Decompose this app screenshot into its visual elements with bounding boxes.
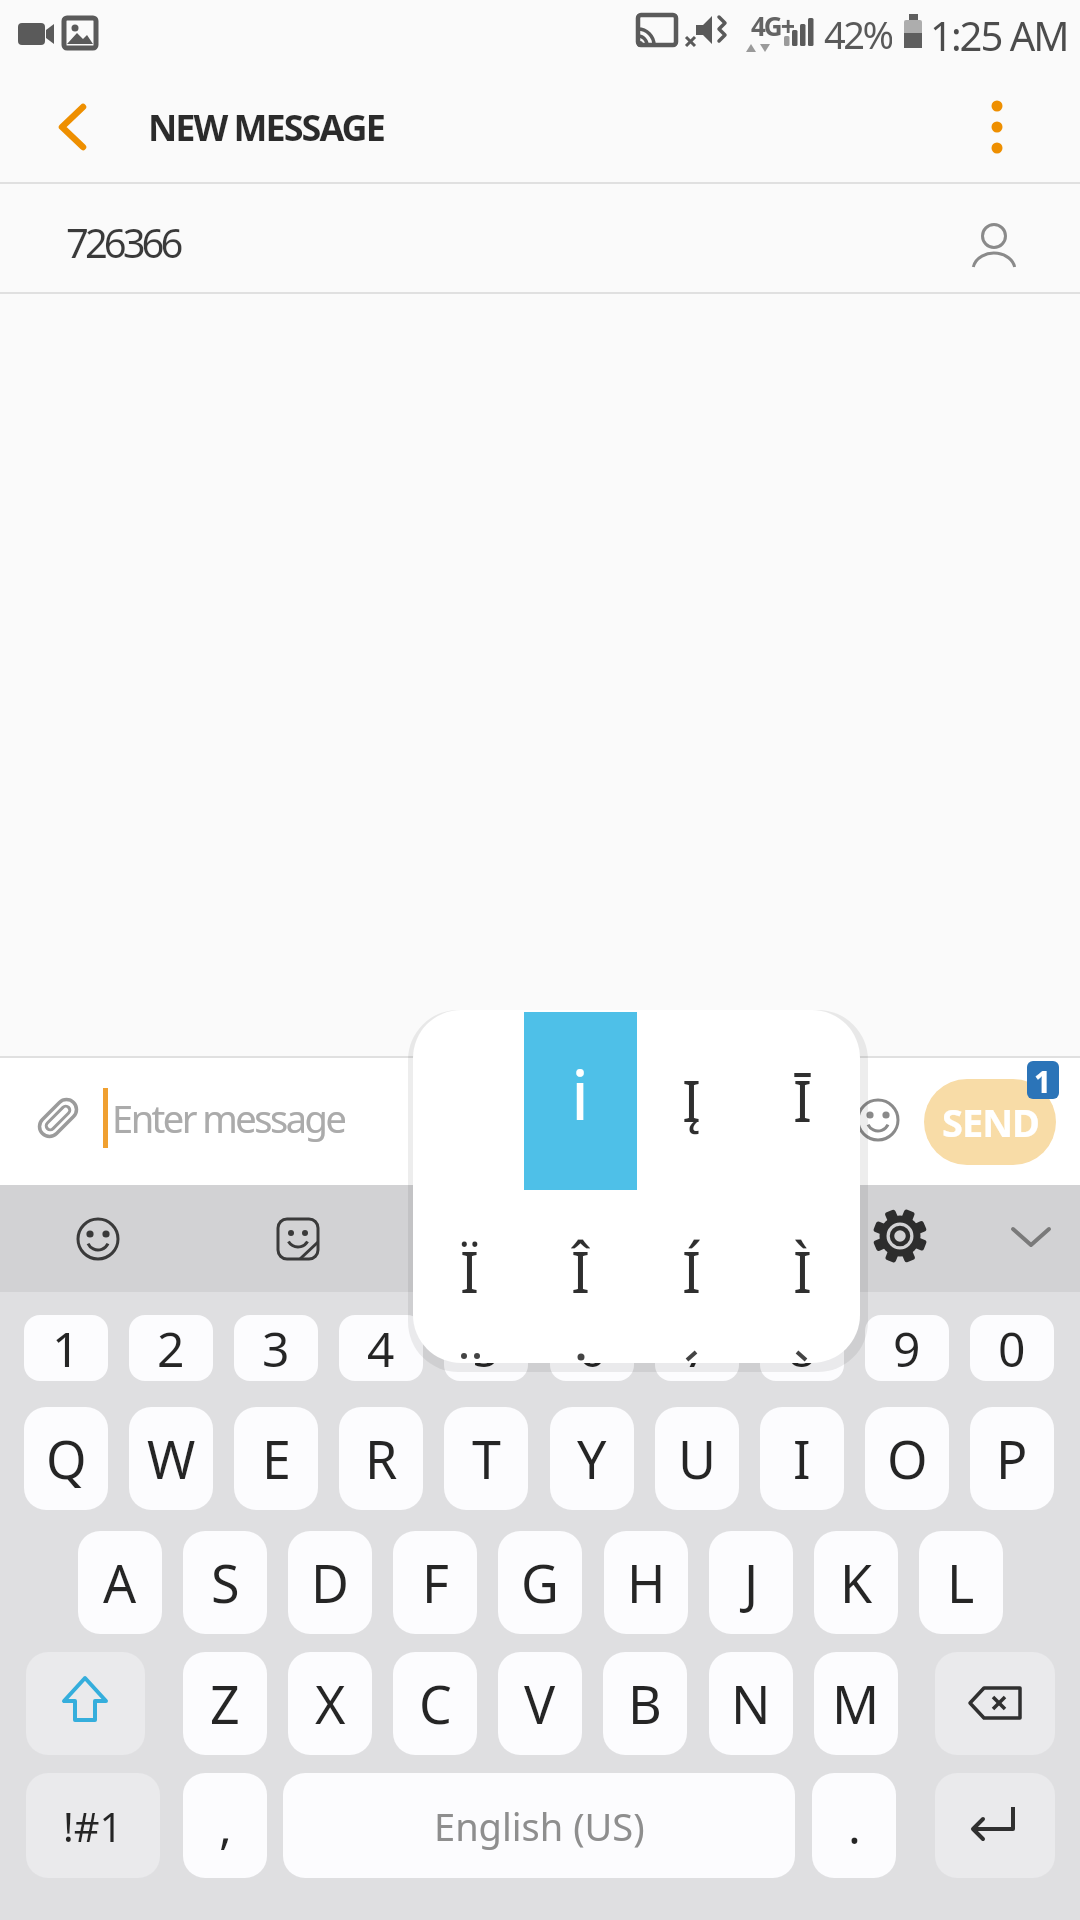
button[interactable]: I <box>760 1407 844 1510</box>
staticText: 5 <box>472 1316 500 1381</box>
button[interactable]: Q <box>24 1407 108 1510</box>
button[interactable] <box>935 1773 1055 1878</box>
staticText: 1 <box>52 1316 80 1381</box>
button[interactable] <box>958 88 1036 166</box>
staticText: A <box>103 1547 137 1618</box>
button[interactable]: W <box>129 1407 213 1510</box>
staticText: Ï <box>460 1233 479 1309</box>
button[interactable]: B <box>603 1652 687 1755</box>
staticText: 2 <box>157 1316 185 1381</box>
button[interactable] <box>995 1203 1067 1275</box>
button[interactable]: M <box>814 1652 898 1755</box>
staticText: NEW MESSAGE <box>148 103 384 152</box>
button[interactable]: N <box>709 1652 793 1755</box>
button[interactable]: !#1 <box>26 1773 160 1878</box>
staticText: Ì <box>793 1233 812 1309</box>
button[interactable]: 4 <box>339 1315 423 1381</box>
staticText: H <box>627 1547 666 1618</box>
button[interactable] <box>956 202 1032 278</box>
button[interactable]: , <box>183 1773 267 1878</box>
button[interactable]: 2 <box>129 1315 213 1381</box>
staticText: M <box>832 1668 880 1739</box>
button[interactable]: 8 <box>760 1315 844 1381</box>
staticText: 9 <box>893 1316 921 1381</box>
staticText: F <box>422 1547 449 1618</box>
button[interactable]: X <box>288 1652 372 1755</box>
button[interactable]: F <box>393 1531 477 1634</box>
staticText: 7 <box>683 1316 711 1381</box>
staticText: I <box>793 1423 811 1494</box>
staticText: U <box>678 1423 717 1494</box>
staticText: 0 <box>998 1316 1026 1381</box>
button[interactable]: O <box>865 1407 949 1510</box>
staticText: V <box>524 1668 556 1739</box>
staticText: G <box>521 1547 559 1618</box>
button[interactable]: 5 <box>444 1315 528 1381</box>
staticText: S <box>211 1547 240 1618</box>
button[interactable]: E <box>234 1407 318 1510</box>
staticText: Z <box>210 1668 240 1739</box>
button[interactable]: P <box>970 1407 1054 1510</box>
staticText: N <box>731 1668 771 1739</box>
staticText: C <box>419 1668 452 1739</box>
staticText: 4 <box>367 1316 395 1381</box>
staticText: 3 <box>262 1316 290 1381</box>
staticText: Ī <box>793 1062 812 1138</box>
staticText: R <box>365 1423 398 1494</box>
button[interactable]: Z <box>183 1652 267 1755</box>
button[interactable] <box>262 1203 334 1275</box>
button[interactable]: Y <box>550 1407 634 1510</box>
staticText: T <box>472 1423 501 1494</box>
button[interactable]: V <box>498 1652 582 1755</box>
button[interactable]: 7 <box>655 1315 739 1381</box>
staticText: 8 <box>788 1316 816 1381</box>
staticText: P <box>996 1423 1028 1494</box>
button[interactable]: D <box>288 1531 372 1634</box>
staticText: !#1 <box>63 1799 123 1853</box>
button[interactable]: L <box>919 1531 1003 1634</box>
button[interactable]: 6 <box>550 1315 634 1381</box>
staticText: . <box>848 1793 861 1858</box>
button[interactable]: C <box>393 1652 477 1755</box>
staticText: Enter message <box>112 1092 345 1144</box>
staticText: Y <box>577 1423 607 1494</box>
button[interactable]: H <box>604 1531 688 1634</box>
button[interactable]: SEND <box>924 1079 1056 1165</box>
button[interactable]: J <box>709 1531 793 1634</box>
button[interactable] <box>935 1652 1055 1755</box>
button[interactable]: T <box>444 1407 528 1510</box>
staticText: O <box>887 1423 928 1494</box>
button[interactable] <box>26 1652 145 1755</box>
button[interactable] <box>22 1084 92 1154</box>
button[interactable]: G <box>498 1531 582 1634</box>
button[interactable]: 9 <box>865 1315 949 1381</box>
button[interactable]: 1 <box>24 1315 108 1381</box>
staticText: 6 <box>578 1316 606 1381</box>
staticText: 726366 <box>66 215 180 269</box>
button[interactable]: S <box>183 1531 267 1634</box>
button[interactable]: 3 <box>234 1315 318 1381</box>
staticText: , <box>219 1793 232 1858</box>
staticText: W <box>147 1423 196 1494</box>
button[interactable]: . <box>812 1773 896 1878</box>
staticText: Q <box>46 1423 87 1494</box>
button[interactable] <box>0 184 940 292</box>
button[interactable] <box>842 1086 912 1156</box>
staticText: English (US) <box>434 1800 645 1852</box>
button[interactable] <box>62 1203 134 1275</box>
staticText: L <box>947 1547 975 1618</box>
staticText: i <box>571 1045 590 1140</box>
staticText: SEND <box>942 1096 1039 1148</box>
button[interactable]: R <box>339 1407 423 1510</box>
button[interactable]: 0 <box>970 1315 1054 1381</box>
button[interactable] <box>60 1060 820 1182</box>
button[interactable] <box>40 88 120 166</box>
button[interactable]: U <box>655 1407 739 1510</box>
button[interactable]: A <box>78 1531 162 1634</box>
staticText: Į <box>682 1062 701 1138</box>
staticText: J <box>744 1547 759 1618</box>
staticText: K <box>840 1547 873 1618</box>
button[interactable] <box>864 1200 936 1272</box>
button[interactable]: K <box>814 1531 898 1634</box>
button[interactable]: English (US) <box>283 1773 795 1878</box>
